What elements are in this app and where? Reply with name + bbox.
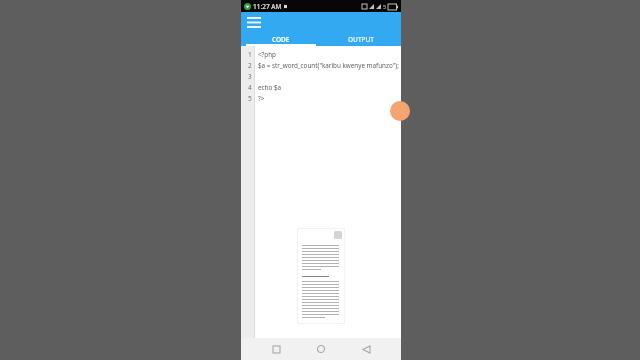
staticText: 5 — [248, 94, 252, 103]
staticText: 11:27 AM — [253, 2, 282, 11]
button[interactable]: CODE — [241, 32, 321, 46]
staticText: 3 — [248, 72, 252, 81]
button[interactable]: Back — [356, 339, 376, 359]
button[interactable]: Run code — [390, 101, 410, 121]
staticText: 4 — [248, 83, 252, 92]
button[interactable]: OUTPUT — [321, 32, 401, 46]
button[interactable]: Home — [311, 339, 331, 359]
staticText: ?> — [258, 94, 265, 103]
staticText: echo $a — [258, 83, 282, 92]
staticText: CODE — [272, 35, 290, 44]
staticText: OUTPUT — [348, 35, 374, 44]
staticText: 5 — [383, 3, 387, 10]
button[interactable]: Open navigation menu — [241, 12, 267, 32]
staticText: 1 — [248, 50, 252, 59]
button[interactable]: Recent apps — [266, 339, 286, 359]
button[interactable] — [297, 228, 345, 324]
staticText: 2 — [248, 61, 252, 70]
staticText: <?php — [258, 50, 276, 59]
staticText: $a = str_word_count("karibu kwenye mafun… — [258, 61, 399, 70]
